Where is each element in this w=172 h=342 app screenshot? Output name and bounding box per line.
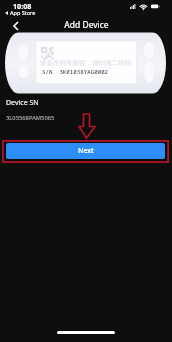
staticText: 设备序列号标签，请扫描二维码	[40, 59, 131, 67]
staticText: Add Device	[64, 19, 109, 31]
staticText: 3L05568PAM5065	[6, 114, 55, 122]
button[interactable]: Back	[9, 19, 22, 32]
staticText: 10:08	[13, 1, 32, 11]
staticText: Next	[78, 146, 94, 156]
staticText: S/N 3K01038YAG0002	[42, 68, 109, 76]
staticText: Device SN	[6, 98, 39, 108]
staticText: App Store	[10, 9, 36, 16]
button[interactable]: Next	[6, 143, 165, 159]
